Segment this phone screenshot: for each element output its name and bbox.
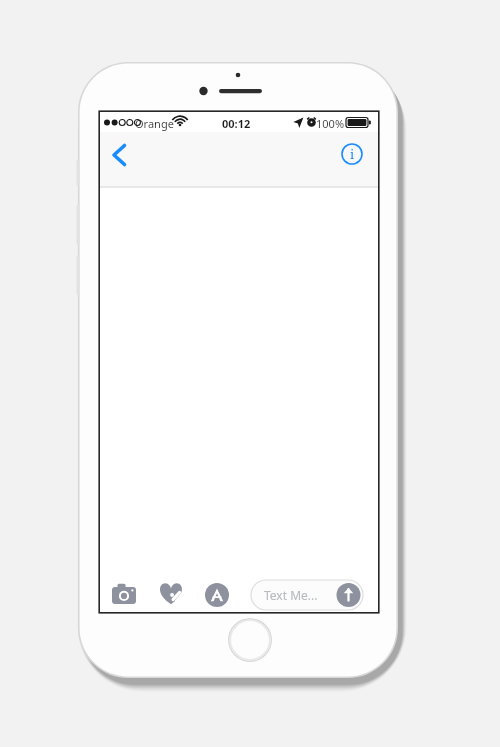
staticText: Text Me... xyxy=(264,587,318,603)
button[interactable]: App Store xyxy=(199,579,235,611)
staticText: 00:12 xyxy=(222,116,251,131)
staticText: Orange xyxy=(135,116,174,131)
button[interactable]: Home xyxy=(229,619,271,661)
button[interactable]: Back xyxy=(103,137,143,177)
button[interactable]: Digital Touch xyxy=(153,579,189,611)
button[interactable]: Details xyxy=(333,136,371,174)
staticText: 100% xyxy=(316,116,345,131)
button[interactable]: Text Me... xyxy=(251,580,363,610)
staticText: i xyxy=(350,145,355,163)
button[interactable]: Camera xyxy=(106,579,142,611)
button[interactable]: Send xyxy=(336,583,361,608)
